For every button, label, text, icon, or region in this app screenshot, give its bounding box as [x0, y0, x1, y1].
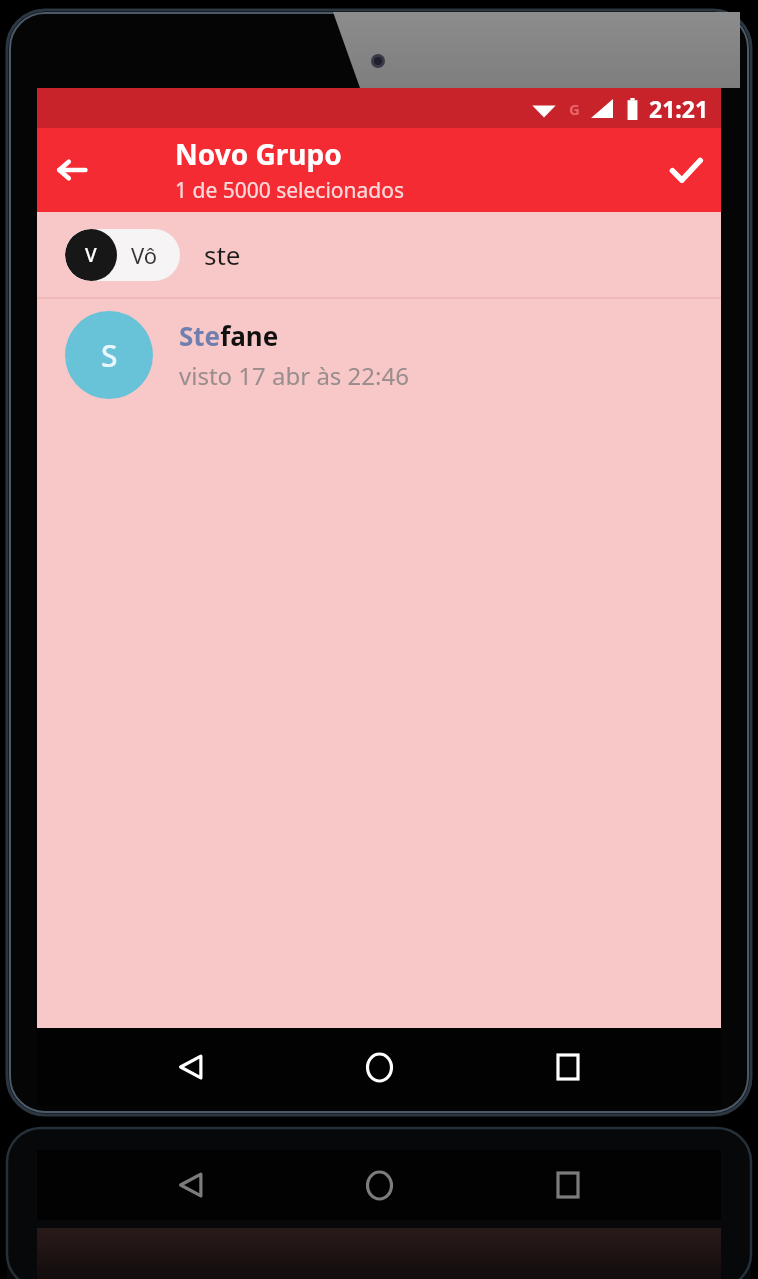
staticText: 21:21 [649, 93, 709, 124]
staticText: Novo Grupo [175, 135, 342, 173]
button[interactable]: Recentes [533, 1032, 603, 1102]
button[interactable]: Início [344, 1032, 414, 1102]
button[interactable]: Voltar [156, 1150, 226, 1220]
staticText: Vô [131, 240, 158, 270]
button[interactable]: S [37, 299, 721, 411]
button[interactable]: Recentes [533, 1150, 603, 1220]
staticText: visto 17 abr às 22:46 [179, 359, 409, 392]
staticText: V [85, 242, 97, 268]
button[interactable]: V [65, 229, 180, 281]
button[interactable]: Início [344, 1150, 414, 1220]
staticText: ste [204, 237, 241, 272]
button[interactable]: Confirmar [651, 135, 721, 205]
staticText: S [101, 335, 118, 376]
staticText: G [569, 99, 580, 119]
staticText: Stefane [179, 318, 279, 353]
button[interactable]: Voltar [37, 135, 107, 205]
staticText: 1 de 5000 selecionados [175, 176, 405, 205]
button[interactable]: Voltar [156, 1032, 226, 1102]
